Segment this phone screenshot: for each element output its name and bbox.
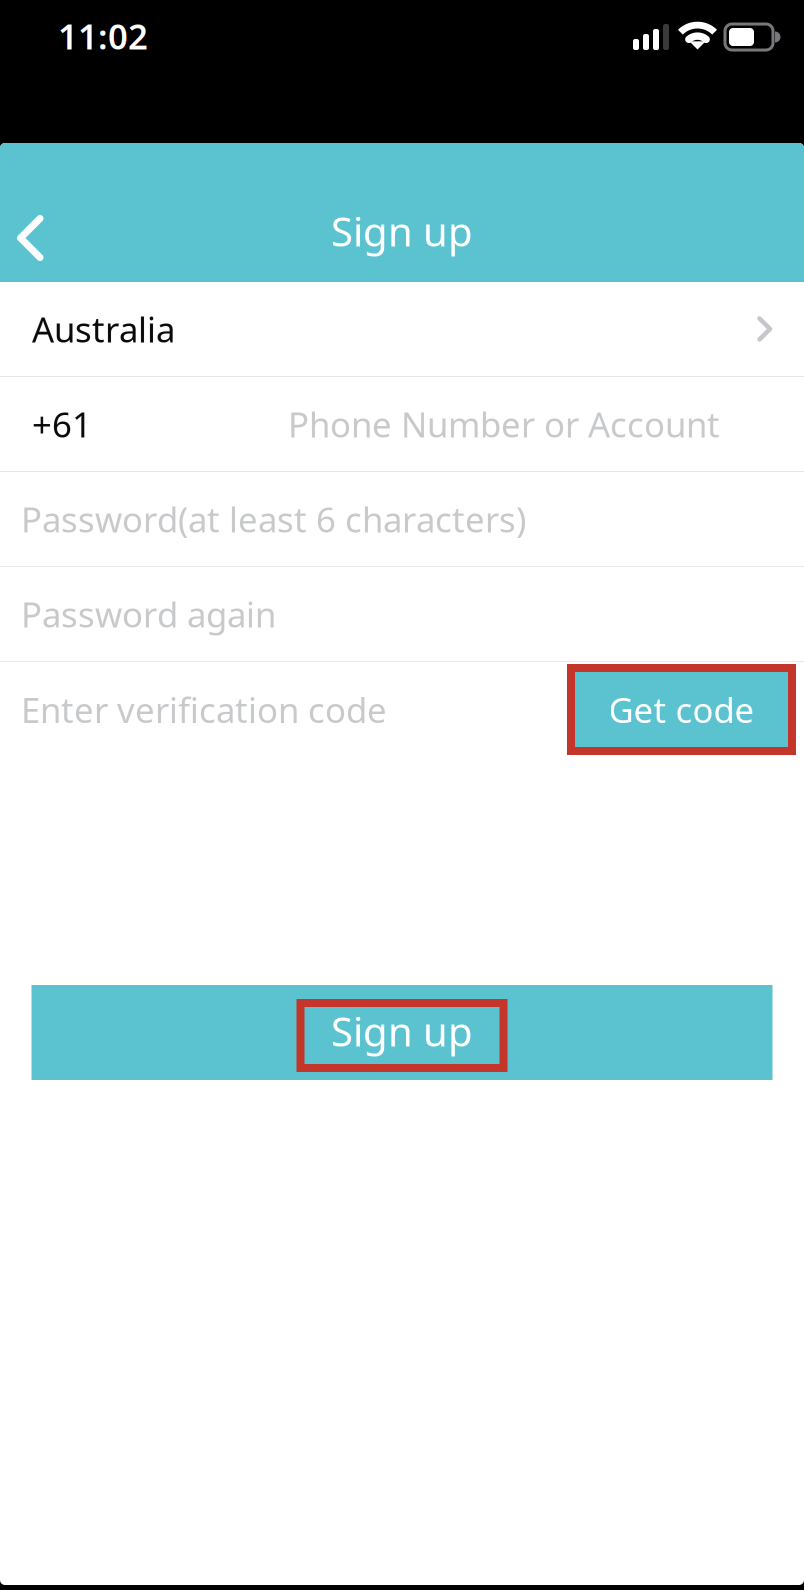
button[interactable]: Password(at least 6 characters) bbox=[0, 472, 804, 566]
button[interactable]: Password again bbox=[0, 567, 804, 661]
staticText: Enter verification code bbox=[21, 686, 387, 732]
staticText: Password again bbox=[21, 591, 276, 637]
staticText: Phone Number or Account bbox=[288, 401, 720, 447]
staticText: 11:02 bbox=[58, 13, 148, 59]
staticText: Australia bbox=[32, 306, 175, 352]
button[interactable]: Sign up bbox=[31, 985, 772, 1080]
button[interactable]: Back bbox=[0, 194, 92, 282]
button[interactable]: Enter verification code bbox=[21, 662, 541, 757]
staticText: Sign up bbox=[331, 204, 473, 257]
staticText: Sign up bbox=[331, 1004, 473, 1057]
button[interactable]: Australia bbox=[0, 282, 804, 376]
button[interactable]: +61 bbox=[0, 377, 804, 471]
staticText: Password(at least 6 characters) bbox=[21, 496, 526, 542]
button[interactable]: Get code bbox=[567, 664, 796, 755]
staticText: Get code bbox=[608, 686, 754, 732]
staticText: +61 bbox=[32, 401, 92, 447]
